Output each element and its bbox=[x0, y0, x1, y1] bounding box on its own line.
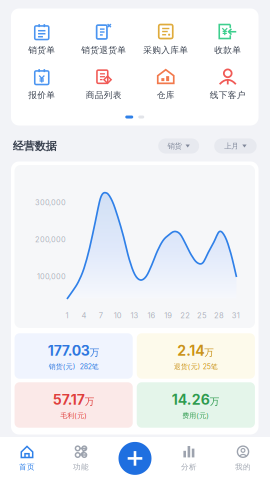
staticText: 2.14 bbox=[177, 342, 204, 359]
button[interactable]: 上月 bbox=[214, 138, 257, 154]
staticText: 经营数据 bbox=[13, 139, 57, 153]
staticText: 退货(元) 25笔 bbox=[174, 362, 218, 371]
button[interactable]: 采购入库单 bbox=[135, 21, 197, 58]
staticText: 7 bbox=[99, 311, 103, 320]
button[interactable]: 首页 bbox=[0, 442, 54, 474]
staticText: 19 bbox=[164, 311, 172, 320]
button[interactable]: 分析 bbox=[162, 442, 216, 474]
staticText: 报价单 bbox=[28, 89, 55, 100]
button[interactable]: 销货退货单 bbox=[73, 21, 135, 58]
staticText: 上月 bbox=[224, 141, 238, 151]
staticText: 收款单 bbox=[214, 44, 241, 55]
staticText: 线下客户 bbox=[210, 89, 246, 100]
staticText: 25 bbox=[197, 311, 207, 320]
staticText: 采购入库单 bbox=[143, 44, 188, 55]
staticText: 177.03 bbox=[48, 342, 90, 359]
staticText: 万 bbox=[210, 395, 220, 408]
button[interactable]: 收款单 bbox=[197, 21, 259, 58]
button[interactable]: 功能 bbox=[54, 442, 108, 474]
staticText: 31 bbox=[232, 311, 240, 320]
button[interactable]: 仓库 bbox=[135, 66, 197, 103]
staticText: 销货(元) 282笔 bbox=[49, 362, 99, 371]
staticText: 22 bbox=[180, 311, 190, 320]
button[interactable]: 商品列表 bbox=[73, 66, 135, 103]
button[interactable]: 销货 bbox=[158, 138, 199, 154]
staticText: 200,000 bbox=[35, 235, 66, 244]
staticText: 仓库 bbox=[157, 89, 175, 100]
staticText: 万 bbox=[204, 346, 214, 359]
button[interactable]: 新建 bbox=[118, 442, 151, 475]
staticText: 100,000 bbox=[37, 272, 66, 281]
staticText: 13 bbox=[130, 311, 138, 320]
staticText: 毛利(元) bbox=[60, 411, 87, 420]
staticText: 费用(元) bbox=[182, 411, 209, 420]
staticText: 14.26 bbox=[172, 391, 210, 408]
staticText: 1 bbox=[65, 311, 68, 320]
staticText: 万 bbox=[90, 346, 100, 359]
staticText: 分析 bbox=[181, 462, 197, 472]
staticText: 商品列表 bbox=[86, 89, 122, 100]
staticText: 销货单 bbox=[28, 44, 55, 55]
staticText: 功能 bbox=[73, 462, 89, 472]
staticText: 4 bbox=[81, 311, 86, 320]
staticText: 10 bbox=[114, 311, 122, 320]
button[interactable]: 我的 bbox=[216, 442, 270, 474]
staticText: 我的 bbox=[235, 462, 251, 472]
staticText: 300,000 bbox=[35, 198, 66, 207]
staticText: 28 bbox=[214, 311, 224, 320]
staticText: 57.17 bbox=[53, 391, 85, 408]
staticText: 首页 bbox=[19, 462, 35, 472]
staticText: 16 bbox=[147, 311, 155, 320]
staticText: 万 bbox=[85, 395, 95, 408]
button[interactable]: 销货单 bbox=[11, 21, 73, 58]
staticText: 销货退货单 bbox=[81, 44, 126, 55]
button[interactable]: 报价单 bbox=[11, 66, 73, 103]
button[interactable]: 线下客户 bbox=[197, 66, 259, 103]
staticText: 销货 bbox=[167, 141, 181, 151]
